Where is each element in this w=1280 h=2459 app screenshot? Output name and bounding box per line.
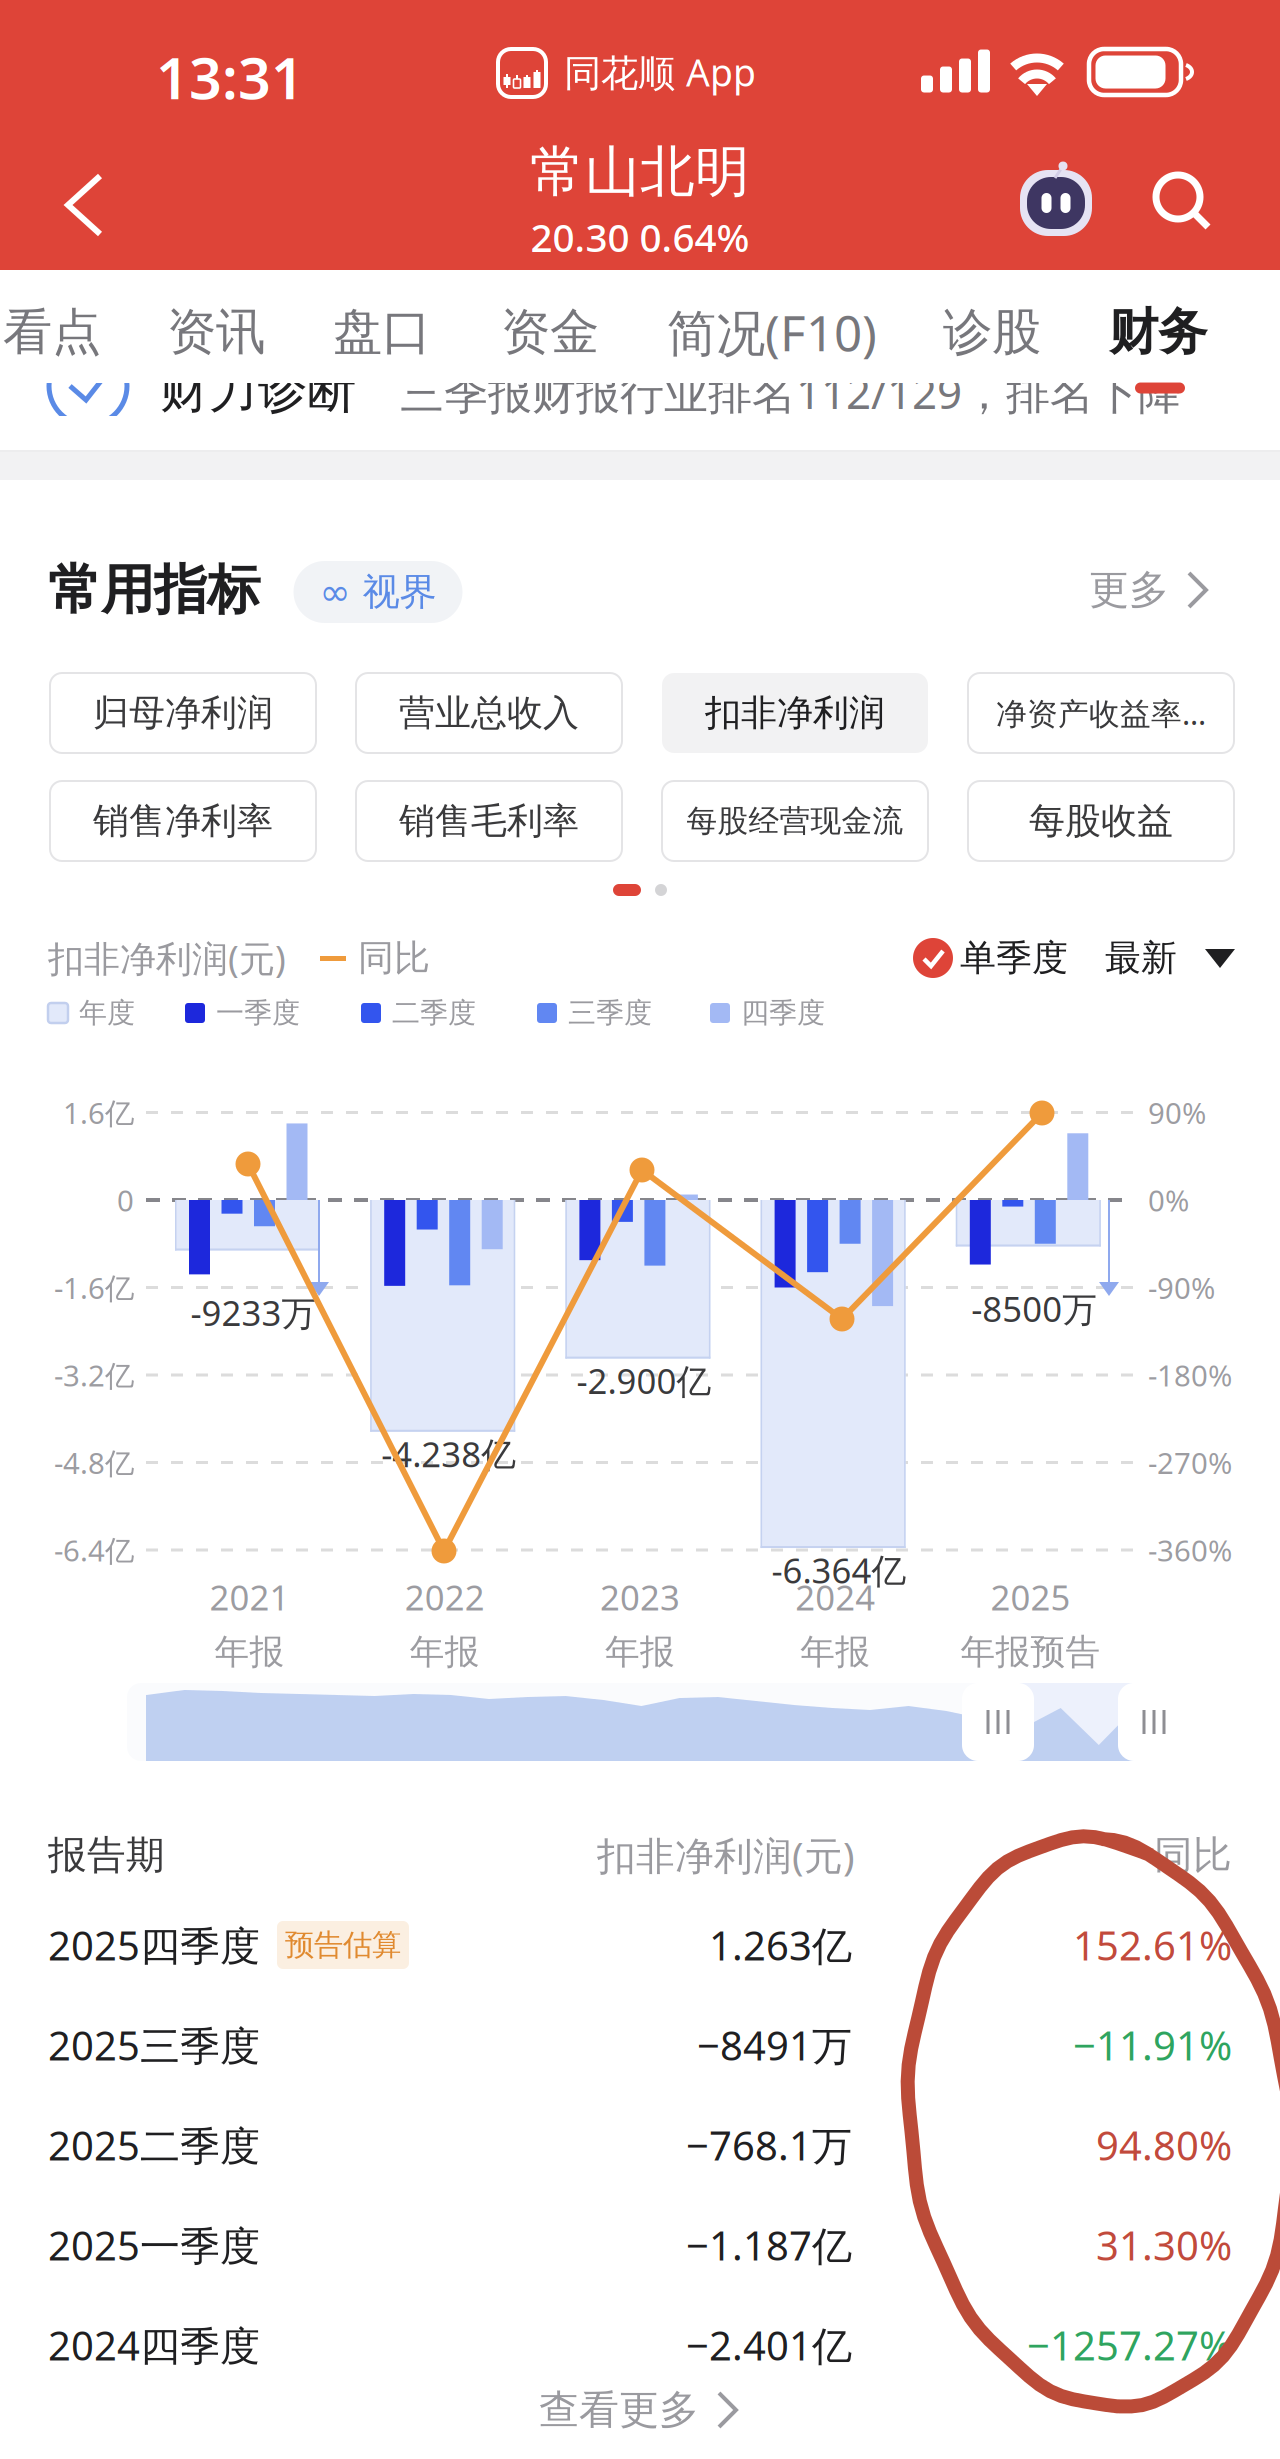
staticText: -270%	[1148, 1443, 1232, 1482]
staticText: 1.6亿	[63, 1093, 134, 1132]
button[interactable]: 每股经营现金流	[662, 781, 928, 861]
staticText: -360%	[1148, 1530, 1232, 1569]
button[interactable]: 诊股	[847, 276, 1137, 388]
staticText: 营业总收入	[399, 691, 579, 735]
staticText: 一季度	[216, 996, 300, 1030]
staticText: 报告期	[48, 1831, 165, 1879]
staticText: 归母净利润	[93, 691, 273, 735]
staticText: 财务	[1109, 302, 1207, 362]
staticText: 资金	[501, 302, 599, 362]
staticText: 20.30 0.64%	[530, 211, 749, 263]
staticText: 13:31	[156, 39, 304, 115]
button[interactable]: 归母净利润	[50, 673, 316, 753]
staticText: 诊股	[943, 302, 1041, 362]
staticText: 同比	[1154, 1831, 1232, 1879]
staticText: 94.80%	[1096, 2118, 1232, 2171]
staticText: 每股收益	[1029, 799, 1173, 843]
staticText: -6.4亿	[54, 1530, 134, 1569]
staticText: 常山北明	[530, 138, 750, 205]
staticText: -6.364亿	[772, 1547, 907, 1593]
button[interactable]: 净资产收益率...	[968, 673, 1234, 753]
staticText: −8491万	[697, 2018, 852, 2071]
button[interactable]: 2025一季度	[0, 2195, 1280, 2294]
staticText: 最新	[1105, 936, 1177, 980]
staticText: 2025二季度	[48, 2118, 260, 2171]
button[interactable]: Search	[1136, 157, 1232, 253]
staticText: 盘口	[333, 302, 431, 362]
button[interactable]: Range end	[1118, 1683, 1190, 1761]
staticText: 四季度	[741, 996, 825, 1030]
button[interactable]: AI assistant	[1017, 164, 1095, 242]
staticText: 年报预告	[960, 1631, 1100, 1673]
staticText: 0	[117, 1180, 134, 1219]
staticText: −11.91%	[1073, 2018, 1232, 2071]
staticText: 单季度	[960, 936, 1068, 980]
button[interactable]: 2025三季度	[0, 1995, 1280, 2094]
staticText: 年度	[79, 996, 135, 1030]
staticText: 年报	[410, 1631, 480, 1673]
button[interactable]: 财务	[1013, 276, 1280, 388]
staticText: 2025三季度	[48, 2018, 260, 2071]
button[interactable]: 每股收益	[968, 781, 1234, 861]
button[interactable]: 更多	[1063, 550, 1237, 630]
button[interactable]: 盘口	[237, 276, 527, 388]
staticText: 0%	[1148, 1180, 1189, 1219]
staticText: −768.1万	[686, 2118, 852, 2171]
staticText: 年报	[215, 1631, 285, 1673]
staticText: 年报	[605, 1631, 675, 1673]
staticText: -9233万	[190, 1289, 316, 1335]
staticText: −2.401亿	[686, 2318, 852, 2371]
staticText: 2025	[990, 1574, 1070, 1620]
staticText: 二季度	[392, 996, 476, 1030]
button[interactable]: 最新	[1105, 920, 1251, 996]
button[interactable]: Range start	[962, 1683, 1034, 1761]
button[interactable]: 营业总收入	[356, 673, 622, 753]
button[interactable]: 2025二季度	[0, 2095, 1280, 2194]
button[interactable]: ∞	[293, 561, 462, 623]
button[interactable]: 简况(F10)	[627, 276, 917, 388]
staticText: -8500万	[971, 1285, 1097, 1331]
staticText: 三季报财报行业排名112/129，排名下降	[400, 363, 1182, 421]
staticText: -4.238亿	[381, 1431, 516, 1477]
button[interactable]: 资金	[405, 276, 695, 388]
staticText: 152.61%	[1073, 1918, 1232, 1971]
staticText: 2022	[405, 1574, 485, 1620]
staticText: 净资产收益率...	[996, 693, 1206, 733]
button[interactable]: 看点	[0, 276, 197, 388]
button[interactable]: 销售毛利率	[356, 781, 622, 861]
staticText: 1.263亿	[709, 1918, 852, 1971]
button[interactable]: 资讯	[71, 276, 361, 388]
staticText: 2023	[600, 1574, 680, 1620]
staticText: 2021	[210, 1574, 290, 1620]
staticText: -2.900亿	[576, 1358, 711, 1404]
staticText: -3.2亿	[54, 1355, 134, 1394]
button[interactable]: 2025四季度	[0, 1895, 1280, 1994]
staticText: 2025四季度	[48, 1918, 260, 1971]
staticText: 资讯	[167, 302, 265, 362]
staticText: 年报	[800, 1631, 870, 1673]
button[interactable]: 查看更多	[509, 2366, 771, 2454]
staticText: 扣非净利润(元)	[48, 934, 286, 982]
staticText: ∞	[319, 571, 350, 613]
staticText: -4.8亿	[54, 1443, 134, 1482]
staticText: 扣非净利润(元)	[597, 1829, 855, 1881]
button[interactable]: 扣非净利润	[662, 673, 928, 753]
button[interactable]: 单季度	[913, 920, 1079, 996]
staticText: -90%	[1148, 1268, 1215, 1307]
button[interactable]: 销售净利率	[50, 781, 316, 861]
staticText: 90%	[1148, 1093, 1206, 1132]
staticText: 预告估算	[285, 1927, 401, 1963]
staticText: 三季度	[568, 996, 652, 1030]
staticText: 销售净利率	[93, 799, 273, 843]
staticText: 同比	[358, 936, 430, 980]
button[interactable]: Back	[34, 158, 134, 252]
staticText: 更多	[1089, 565, 1169, 614]
button[interactable]: 2024四季度	[0, 2295, 1280, 2394]
staticText: 2025一季度	[48, 2218, 260, 2271]
staticText: -1.6亿	[54, 1268, 134, 1307]
staticText: 同花顺 App	[564, 47, 756, 97]
staticText: −1.187亿	[686, 2218, 852, 2271]
staticText: 扣非净利润	[705, 691, 885, 735]
staticText: 查看更多	[539, 2385, 699, 2434]
staticText: 简况(F10)	[667, 299, 877, 365]
